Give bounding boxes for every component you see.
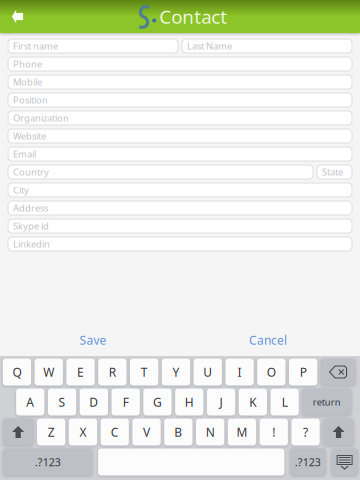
button[interactable]: F xyxy=(111,388,140,415)
button[interactable]: Delete xyxy=(321,358,355,385)
button[interactable]: I xyxy=(225,358,254,385)
button[interactable]: Save xyxy=(63,331,123,349)
button[interactable]: .?123 xyxy=(290,448,326,475)
button[interactable]: W xyxy=(35,358,63,385)
staticText: Position xyxy=(13,94,48,106)
button[interactable]: N xyxy=(196,418,224,445)
staticText: G xyxy=(153,394,162,410)
staticText: City xyxy=(13,184,29,196)
staticText: .?123 xyxy=(35,455,61,469)
staticText: First name xyxy=(13,40,58,52)
staticText: X xyxy=(79,424,86,440)
button[interactable]: Dismiss Keyboard xyxy=(331,448,358,475)
button[interactable]: Address xyxy=(8,201,352,215)
button[interactable]: T xyxy=(130,358,158,385)
button[interactable]: Y xyxy=(162,358,190,385)
button[interactable]: Email xyxy=(8,147,352,161)
staticText: A xyxy=(26,394,34,410)
button[interactable]: Website xyxy=(8,129,352,143)
button[interactable]: ! xyxy=(260,418,288,445)
button[interactable]: Back xyxy=(0,0,35,33)
staticText: Address xyxy=(13,202,48,214)
button[interactable]: L xyxy=(270,388,299,415)
button[interactable]: J xyxy=(207,388,235,415)
staticText: ! xyxy=(272,424,275,440)
button[interactable]: K xyxy=(239,388,267,415)
button[interactable]: E xyxy=(66,358,95,385)
button[interactable]: Shift xyxy=(3,418,33,445)
button[interactable]: B xyxy=(164,418,192,445)
staticText: N xyxy=(206,424,215,440)
staticText: K xyxy=(249,394,256,410)
staticText: U xyxy=(203,364,212,380)
staticText: Save xyxy=(79,332,106,348)
staticText: R xyxy=(109,364,116,380)
staticText: C xyxy=(111,424,119,440)
button[interactable]: City xyxy=(8,183,352,197)
staticText: Contact xyxy=(159,4,227,29)
button[interactable]: Last Name xyxy=(182,39,352,53)
button[interactable]: S xyxy=(48,388,76,415)
button[interactable]: Position xyxy=(8,93,352,107)
button[interactable]: Q xyxy=(3,358,31,385)
staticText: P xyxy=(300,364,307,380)
button[interactable]: Linkedin xyxy=(8,237,352,251)
staticText: D xyxy=(89,394,98,410)
staticText: return xyxy=(313,396,341,408)
staticText: Skype id xyxy=(13,220,49,232)
staticText: E xyxy=(77,364,84,380)
staticText: M xyxy=(236,424,247,440)
staticText: ? xyxy=(303,424,308,440)
staticText: Q xyxy=(12,364,21,380)
button[interactable]: .?123 xyxy=(3,448,92,475)
button[interactable]: G xyxy=(143,388,172,415)
staticText: B xyxy=(174,424,182,440)
button[interactable]: Mobile xyxy=(8,75,352,89)
button[interactable]: Shift xyxy=(323,418,354,445)
staticText: Phone xyxy=(13,58,42,70)
staticText: I xyxy=(238,364,242,380)
button[interactable]: State xyxy=(317,165,352,179)
button[interactable]: C xyxy=(101,418,129,445)
staticText: H xyxy=(185,394,194,410)
button[interactable]: M xyxy=(228,418,256,445)
button[interactable] xyxy=(98,448,284,475)
staticText: .?123 xyxy=(295,455,321,469)
button[interactable]: O xyxy=(257,358,285,385)
staticText: Website xyxy=(13,130,46,142)
staticText: O xyxy=(267,364,276,380)
button[interactable]: D xyxy=(80,388,108,415)
staticText: Email xyxy=(13,148,36,160)
button[interactable]: A xyxy=(16,388,44,415)
button[interactable]: Country xyxy=(8,165,313,179)
button[interactable]: Organization xyxy=(8,111,352,125)
button[interactable]: R xyxy=(98,358,126,385)
staticText: F xyxy=(123,394,129,410)
button[interactable]: U xyxy=(194,358,222,385)
staticText: Country xyxy=(13,166,49,178)
button[interactable]: V xyxy=(132,418,161,445)
staticText: W xyxy=(43,364,54,380)
staticText: S xyxy=(59,394,66,410)
button[interactable]: Z xyxy=(37,418,65,445)
button[interactable]: Skype id xyxy=(8,219,352,233)
staticText: Mobile xyxy=(13,76,42,88)
staticText: Y xyxy=(172,364,179,380)
button[interactable]: Phone xyxy=(8,57,352,71)
button[interactable]: Cancel xyxy=(238,331,298,349)
staticText: Last Name xyxy=(187,40,232,52)
staticText: Cancel xyxy=(249,332,287,348)
staticText: Organization xyxy=(13,112,69,124)
staticText: Z xyxy=(48,424,55,440)
staticText: J xyxy=(220,394,223,410)
staticText: Linkedin xyxy=(13,238,50,250)
button[interactable]: P xyxy=(289,358,317,385)
button[interactable]: H xyxy=(175,388,203,415)
button[interactable]: X xyxy=(69,418,97,445)
button[interactable]: ? xyxy=(291,418,320,445)
button[interactable]: First name xyxy=(8,39,178,53)
staticText: L xyxy=(282,394,288,410)
button[interactable]: return xyxy=(302,388,351,415)
staticText: State xyxy=(322,166,343,178)
